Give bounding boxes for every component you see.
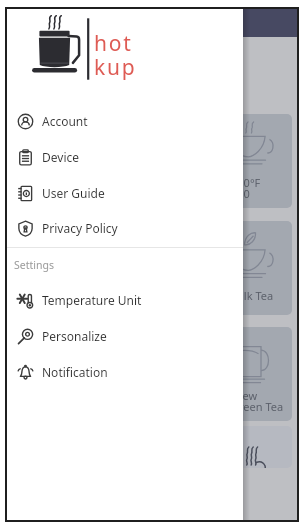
staticText: Personalize <box>42 328 107 344</box>
staticText: kup <box>94 53 137 82</box>
button[interactable]: Milk Tea <box>21 221 292 315</box>
staticText: Milk Tea <box>231 288 274 303</box>
button[interactable]: User Guide <box>7 175 243 211</box>
staticText: User Guide <box>42 185 105 201</box>
button[interactable]: Temperature Unit <box>7 282 243 318</box>
staticText: Temperature Unit <box>42 292 142 308</box>
staticText: Account <box>42 113 88 129</box>
staticText: Brew Green Tea <box>231 388 284 415</box>
button[interactable]: Device <box>7 139 243 175</box>
button[interactable]: Brew Green Tea <box>21 327 292 421</box>
button[interactable] <box>21 426 292 468</box>
staticText: Settings <box>14 258 54 272</box>
staticText: Device <box>42 149 80 165</box>
staticText: Notification <box>42 364 108 380</box>
button[interactable]: Privacy Policy <box>7 210 243 246</box>
button[interactable]: Personalize <box>7 318 243 354</box>
staticText: 100°F 100 <box>231 175 261 202</box>
button[interactable]: Notification <box>7 354 243 390</box>
button[interactable]: 100°F 100 <box>21 114 292 208</box>
button[interactable]: Account <box>7 103 243 139</box>
staticText: hot <box>94 29 133 58</box>
staticText: Privacy Policy <box>42 220 118 236</box>
